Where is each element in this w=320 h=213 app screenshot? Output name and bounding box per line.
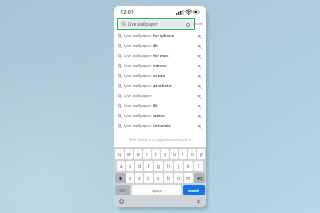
staticText: Live wallpaper — [124, 113, 153, 119]
button[interactable]: Live wallpaper — [114, 111, 206, 121]
button[interactable]: a — [117, 161, 125, 171]
staticText: o — [191, 151, 194, 157]
staticText: Live wallpaper — [124, 53, 153, 59]
button[interactable]: m — [184, 173, 193, 183]
staticText: Cancel — [190, 21, 204, 27]
staticText: Live wallpaper — [128, 21, 158, 27]
staticText: w — [127, 151, 131, 157]
staticText: u — [173, 151, 176, 157]
staticText: l — [198, 163, 200, 169]
button[interactable]: 123 — [115, 185, 130, 195]
button[interactable]: Live wallpaper — [114, 31, 206, 41]
button[interactable]: w — [125, 149, 133, 159]
button[interactable]: Live wallpaper — [114, 121, 206, 131]
button[interactable]: d — [135, 161, 143, 171]
button[interactable]: j — [174, 161, 183, 171]
staticText: Live wallpaper — [124, 93, 152, 99]
button[interactable]: Live wallpaper — [114, 81, 206, 91]
button[interactable]: i — [179, 149, 187, 159]
button[interactable]: Fill suggestion — [197, 44, 202, 49]
button[interactable]: n — [174, 173, 183, 183]
staticText: z — [129, 175, 132, 181]
button[interactable]: Backspace — [194, 173, 205, 183]
button[interactable]: Fill suggestion — [197, 34, 202, 39]
button[interactable]: Cancel — [189, 21, 205, 27]
button[interactable]: Fill suggestion — [197, 114, 202, 119]
staticText: Web Search is a suggestion of source 4 — [129, 137, 191, 142]
staticText: r — [146, 151, 148, 157]
staticText: a — [120, 163, 123, 169]
button[interactable]: q — [115, 149, 124, 159]
button[interactable]: u — [170, 149, 178, 159]
staticText: f — [148, 163, 150, 169]
staticText: b — [167, 175, 170, 181]
staticText: 4k — [153, 43, 158, 49]
staticText: nature — [153, 63, 167, 69]
button[interactable]: Clear text — [185, 22, 190, 27]
staticText: Live wallpaper — [124, 43, 153, 49]
staticText: 8k — [153, 103, 158, 109]
staticText: k — [187, 163, 190, 169]
button[interactable]: Live wallpaper — [114, 61, 206, 71]
staticText: n — [177, 175, 180, 181]
button[interactable]: Fill suggestion — [197, 84, 202, 89]
staticText: g — [157, 163, 160, 169]
button[interactable]: Fill suggestion — [197, 94, 202, 99]
staticText: x — [138, 175, 141, 181]
staticText: water — [153, 113, 166, 119]
button[interactable]: Live wallpaper — [119, 20, 193, 28]
staticText: 12:01 — [120, 8, 135, 15]
button[interactable]: r — [143, 149, 151, 159]
staticText: tutorials — [153, 123, 171, 129]
button[interactable]: Emoji — [118, 198, 125, 205]
button[interactable]: Shift — [115, 173, 126, 183]
button[interactable]: p — [197, 149, 205, 159]
button[interactable]: s — [126, 161, 134, 171]
staticText: j — [178, 163, 180, 169]
staticText: v — [157, 175, 160, 181]
staticText: Live wallpaper — [124, 33, 153, 39]
staticText: e — [137, 151, 140, 157]
button[interactable]: t — [152, 149, 160, 159]
button[interactable]: Live wallpaper — [114, 101, 206, 111]
button[interactable]: e — [134, 149, 142, 159]
button[interactable]: Voice input — [195, 198, 202, 205]
staticText: for iphone — [153, 33, 175, 39]
button[interactable]: l — [194, 161, 203, 171]
button[interactable]: h — [164, 161, 173, 171]
button[interactable]: y — [161, 149, 169, 159]
button[interactable]: Fill suggestion — [197, 124, 202, 129]
staticText: ocean — [153, 73, 166, 79]
staticText: Live wallpaper — [124, 123, 153, 129]
button[interactable]: search — [183, 185, 205, 195]
button[interactable]: o — [188, 149, 196, 159]
staticText: Live wallpaper — [124, 103, 153, 109]
button[interactable]: k — [184, 161, 193, 171]
button[interactable]: c — [144, 173, 153, 183]
staticText: space — [152, 188, 162, 193]
button[interactable]: Live wallpaper — [114, 71, 206, 81]
staticText: p — [200, 151, 203, 157]
button[interactable]: b — [164, 173, 173, 183]
button[interactable]: space — [132, 185, 181, 195]
button[interactable]: f — [144, 161, 153, 171]
button[interactable]: v — [154, 173, 163, 183]
button[interactable]: Fill suggestion — [197, 54, 202, 59]
staticText: search — [188, 188, 200, 193]
button[interactable]: Live wallpaper — [114, 91, 206, 101]
button[interactable]: z — [126, 173, 134, 183]
button[interactable]: Fill suggestion — [197, 74, 202, 79]
staticText: h — [167, 163, 170, 169]
staticText: i — [182, 151, 184, 157]
button[interactable]: Fill suggestion — [197, 104, 202, 109]
button[interactable]: x — [135, 173, 143, 183]
staticText: aesthetic — [153, 83, 172, 89]
staticText: q — [118, 151, 121, 157]
staticText: c — [147, 175, 150, 181]
staticText: Live wallpaper — [124, 63, 153, 69]
staticText: y — [164, 151, 167, 157]
button[interactable]: Live wallpaper — [114, 51, 206, 61]
button[interactable]: Fill suggestion — [197, 64, 202, 69]
button[interactable]: Live wallpaper — [114, 41, 206, 51]
button[interactable]: g — [154, 161, 163, 171]
